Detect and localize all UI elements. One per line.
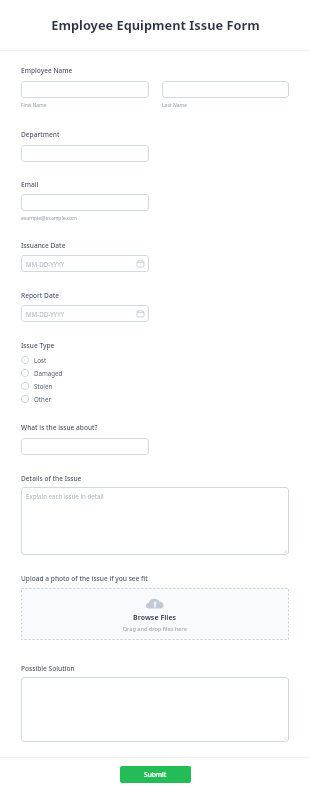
- staticText: MM-DD-YYYY: [26, 310, 65, 318]
- button[interactable]: MM-DD-YYYY: [21, 255, 149, 272]
- button[interactable]: Lost: [21, 353, 141, 366]
- button[interactable]: [162, 81, 289, 98]
- button[interactable]: [21, 145, 149, 162]
- staticText: Last Name: [162, 102, 188, 109]
- staticText: Stolen: [34, 382, 53, 390]
- staticText: Other: [34, 395, 51, 403]
- button[interactable]: Submit: [120, 766, 191, 783]
- button[interactable]: Other: [21, 392, 141, 405]
- button[interactable]: [21, 194, 149, 211]
- staticText: Details of the Issue: [21, 474, 82, 483]
- staticText: Possible Solution: [21, 664, 75, 673]
- staticText: What is the issue about?: [21, 423, 98, 432]
- button[interactable]: Stolen: [21, 379, 141, 392]
- staticText: Explain each issue in detail: [26, 492, 104, 500]
- staticText: First Name: [21, 102, 47, 109]
- staticText: Department: [21, 130, 60, 139]
- button[interactable]: Explain each issue in detail: [21, 487, 289, 555]
- button[interactable]: [21, 438, 149, 455]
- staticText: Employee Name: [21, 66, 73, 75]
- button[interactable]: Damaged: [21, 366, 141, 379]
- staticText: Lost: [34, 356, 47, 364]
- staticText: Damaged: [34, 369, 63, 377]
- staticText: MM-DD-YYYY: [26, 260, 65, 268]
- staticText: Drag and drop files here: [123, 625, 187, 633]
- button[interactable]: [21, 677, 289, 742]
- staticText: Issuance Date: [21, 241, 66, 250]
- button[interactable]: MM-DD-YYYY: [21, 305, 149, 322]
- staticText: Upload a photo of the issue if you see f…: [21, 574, 148, 583]
- staticText: Issue Type: [21, 341, 55, 350]
- staticText: Employee Equipment Issue Form: [51, 16, 260, 33]
- staticText: Browse Files: [133, 613, 177, 623]
- button[interactable]: [21, 81, 149, 98]
- staticText: Email: [21, 180, 39, 189]
- staticText: Submit: [144, 770, 167, 779]
- staticText: example@example.com: [21, 215, 77, 222]
- button[interactable]: Browse Files, drag and drop files here: [21, 588, 289, 640]
- staticText: Report Date: [21, 291, 59, 300]
